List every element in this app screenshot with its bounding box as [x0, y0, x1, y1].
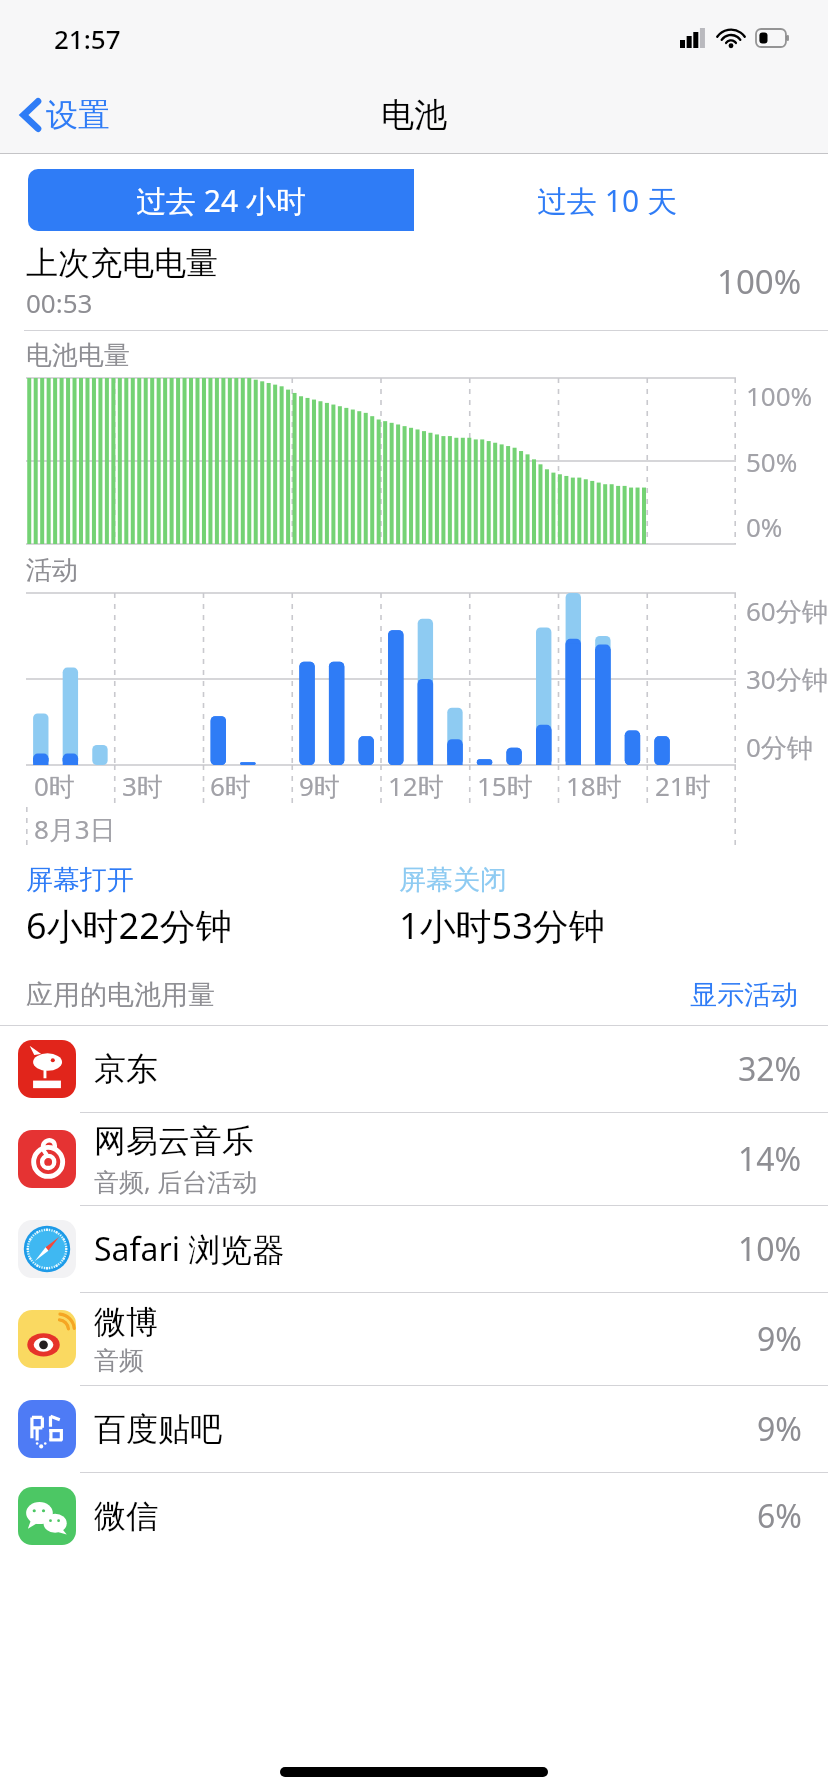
button[interactable]: Safari 浏览器 [0, 1206, 828, 1292]
staticText: 8月3日 [34, 811, 116, 847]
staticText: 屏幕关闭 [399, 863, 507, 897]
button[interactable]: 京东 [0, 1026, 828, 1112]
staticText: 设置 [46, 95, 110, 135]
staticText: 活动 [26, 554, 78, 587]
staticText: 上次充电电量 [26, 243, 218, 283]
button[interactable]: 过去 24 小时 [28, 169, 414, 231]
staticText: 百度贴吧 [94, 1409, 222, 1449]
staticText: 21时 [655, 768, 711, 804]
staticText: 1小时53分钟 [399, 901, 605, 950]
staticText: 60分钟 [746, 593, 828, 629]
staticText: 100% [746, 378, 813, 413]
button[interactable]: 网易云音乐 [0, 1113, 828, 1205]
staticText: 6% [757, 1494, 802, 1538]
button[interactable]: 微博 [0, 1293, 828, 1385]
staticText: 0% [746, 509, 783, 544]
button[interactable]: 过去 10 天 [414, 169, 800, 231]
staticText: 100% [717, 259, 802, 304]
staticText: 9时 [299, 768, 340, 804]
button[interactable]: 百度贴吧 [0, 1386, 828, 1472]
staticText: 0时 [34, 768, 75, 804]
staticText: Safari 浏览器 [94, 1227, 285, 1271]
staticText: 6小时22分钟 [26, 901, 232, 950]
staticText: 6时 [210, 768, 251, 804]
staticText: 00:53 [26, 285, 93, 320]
staticText: 过去 10 天 [537, 180, 677, 221]
staticText: 50% [746, 444, 798, 479]
staticText: 32% [738, 1047, 802, 1091]
staticText: 15时 [477, 768, 533, 804]
staticText: 微信 [94, 1496, 158, 1536]
button[interactable]: 设置 [0, 89, 126, 141]
button[interactable]: 显示活动 [686, 974, 802, 1016]
staticText: 屏幕打开 [26, 863, 134, 897]
staticText: 0分钟 [746, 729, 813, 765]
staticText: 14% [738, 1137, 802, 1181]
staticText: 电池 [381, 94, 447, 136]
staticText: 电池电量 [26, 339, 130, 372]
staticText: 音频 [94, 1345, 144, 1376]
staticText: 显示活动 [690, 978, 798, 1012]
button[interactable]: 微信 [0, 1473, 828, 1559]
staticText: 9% [757, 1317, 802, 1361]
staticText: 12时 [388, 768, 444, 804]
staticText: 过去 24 小时 [136, 180, 306, 221]
staticText: 微博 [94, 1302, 158, 1342]
staticText: 音频, 后台活动 [94, 1164, 258, 1198]
staticText: 应用的电池用量 [26, 978, 686, 1012]
staticText: 18时 [566, 768, 622, 804]
staticText: 9% [757, 1407, 802, 1451]
staticText: 网易云音乐 [94, 1121, 254, 1161]
staticText: 21:57 [54, 21, 121, 56]
staticText: 京东 [94, 1049, 158, 1089]
staticText: 10% [738, 1227, 802, 1271]
staticText: 30分钟 [746, 661, 828, 697]
staticText: 3时 [122, 768, 163, 804]
